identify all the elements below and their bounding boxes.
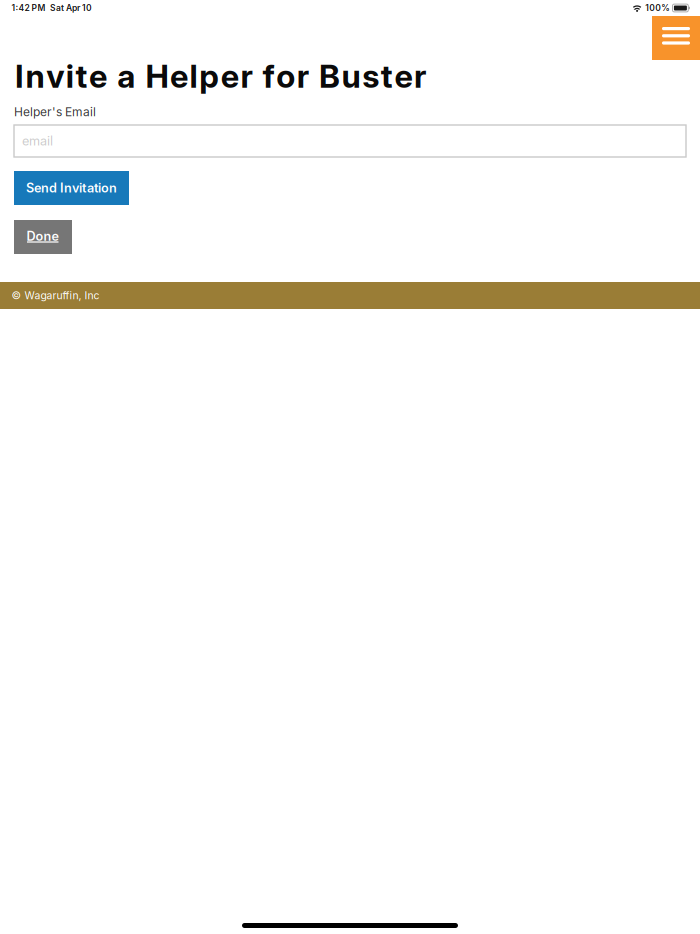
button[interactable]: Menu — [652, 16, 700, 60]
staticText: Done — [26, 228, 58, 244]
staticText: Invite a Helper for Buster — [15, 57, 426, 95]
staticText: Send Invitation — [26, 180, 117, 196]
staticText: Helper's Email — [14, 105, 96, 119]
staticText: email — [22, 133, 53, 149]
staticText: Sat Apr 10 — [50, 3, 92, 13]
staticText: 1:42 PM — [11, 3, 45, 13]
staticText: 100% — [645, 3, 670, 13]
button[interactable]: Helper's Email — [14, 125, 686, 157]
button[interactable]: Done — [14, 220, 72, 254]
staticText: © Wagaruffin, Inc — [11, 289, 99, 302]
button[interactable]: Send Invitation — [14, 171, 129, 205]
